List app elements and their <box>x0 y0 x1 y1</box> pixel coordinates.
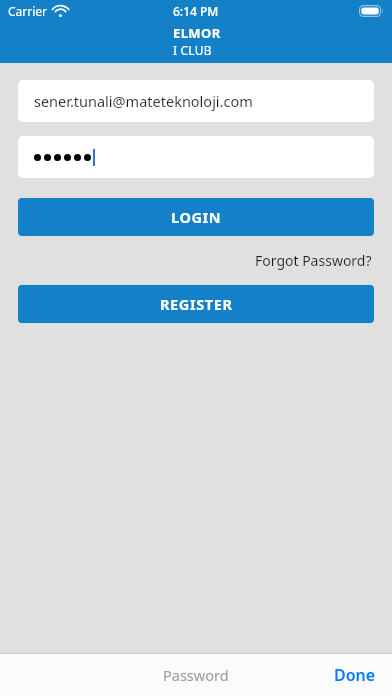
staticText: REGISTER <box>160 294 233 314</box>
staticText: Done <box>334 664 376 686</box>
staticText: ELMOR <box>173 24 221 42</box>
staticText: LOGIN <box>171 207 222 227</box>
button[interactable]: Done <box>318 658 392 692</box>
button[interactable]: LOGIN <box>18 198 374 236</box>
staticText: 6:14 PM <box>173 3 219 19</box>
staticText: I CLUB <box>173 42 212 58</box>
button[interactable] <box>18 136 374 178</box>
other: Wi-Fi <box>53 6 68 17</box>
staticText: sener.tunali@mateteknoloji.com <box>34 91 253 111</box>
staticText: Password <box>163 665 229 685</box>
staticText: Carrier <box>8 3 48 19</box>
other: Battery <box>359 5 384 17</box>
button[interactable]: sener.tunali@mateteknoloji.com <box>18 80 374 122</box>
staticText: Forgot Password? <box>255 251 372 270</box>
button[interactable]: Forgot Password? <box>253 248 374 273</box>
button[interactable]: REGISTER <box>18 285 374 323</box>
